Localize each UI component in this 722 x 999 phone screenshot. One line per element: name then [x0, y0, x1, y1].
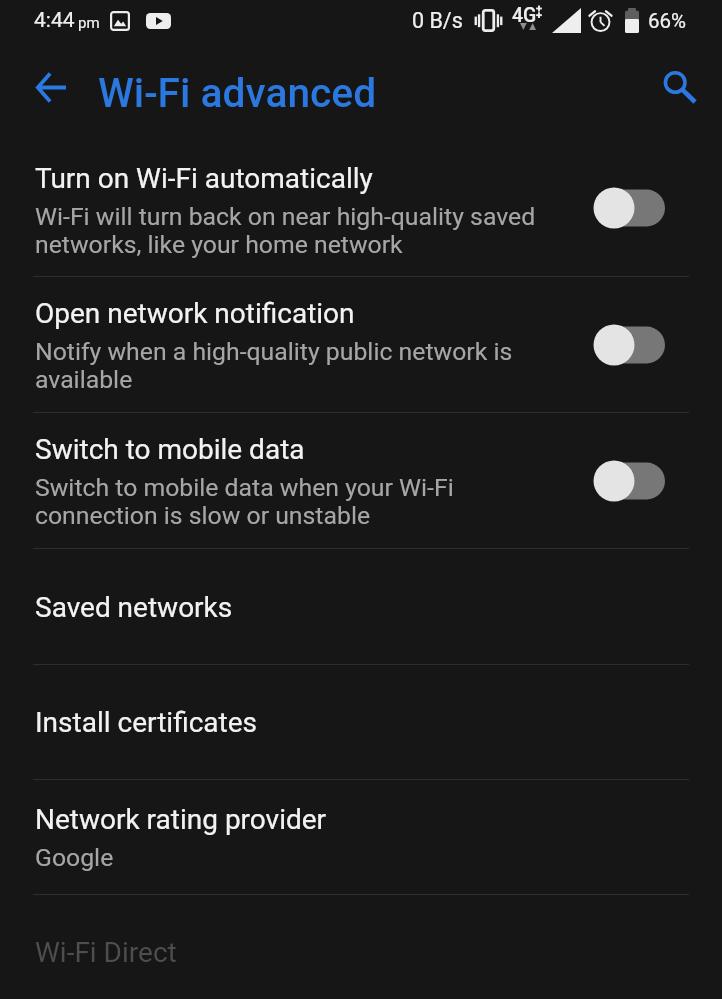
button[interactable]: Search	[651, 57, 709, 115]
staticText: Wi-Fi will turn back on near high-qualit…	[35, 203, 536, 259]
button[interactable]: Switch to mobile data	[0, 413, 722, 548]
button[interactable]: Install certificates	[0, 665, 722, 779]
staticText: Switch to mobile data	[35, 432, 305, 466]
staticText: Open network notification	[35, 296, 355, 330]
staticText: Install certificates	[35, 705, 257, 739]
staticText: Google	[35, 844, 114, 872]
staticText: Saved networks	[35, 590, 233, 624]
button[interactable]: Saved networks	[0, 549, 722, 664]
staticText: Network rating provider	[35, 802, 327, 836]
staticText: 4G	[512, 4, 537, 27]
staticText: 4:44	[34, 8, 75, 33]
staticText: pm	[78, 14, 100, 32]
button[interactable]: Network rating provider	[0, 780, 722, 894]
staticText: Wi-Fi advanced	[98, 69, 377, 117]
button[interactable]: Navigate up	[22, 58, 80, 116]
staticText: 0 B/s	[412, 8, 463, 33]
button[interactable]: Open network notification	[0, 277, 722, 412]
staticText: Switch to mobile data when your Wi-Fi co…	[35, 474, 454, 530]
staticText: Wi-Fi Direct	[35, 935, 177, 969]
staticText: Notify when a high-quality public networ…	[35, 338, 513, 394]
button[interactable]: Turn on Wi-Fi automatically	[0, 132, 722, 276]
button[interactable]: Wi-Fi Direct	[0, 895, 722, 999]
staticText: Turn on Wi-Fi automatically	[35, 161, 373, 195]
staticText: 66%	[648, 9, 687, 33]
